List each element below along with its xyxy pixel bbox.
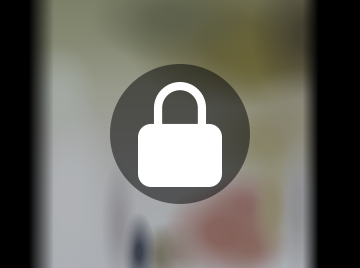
button[interactable]: Locked content [0, 0, 360, 268]
